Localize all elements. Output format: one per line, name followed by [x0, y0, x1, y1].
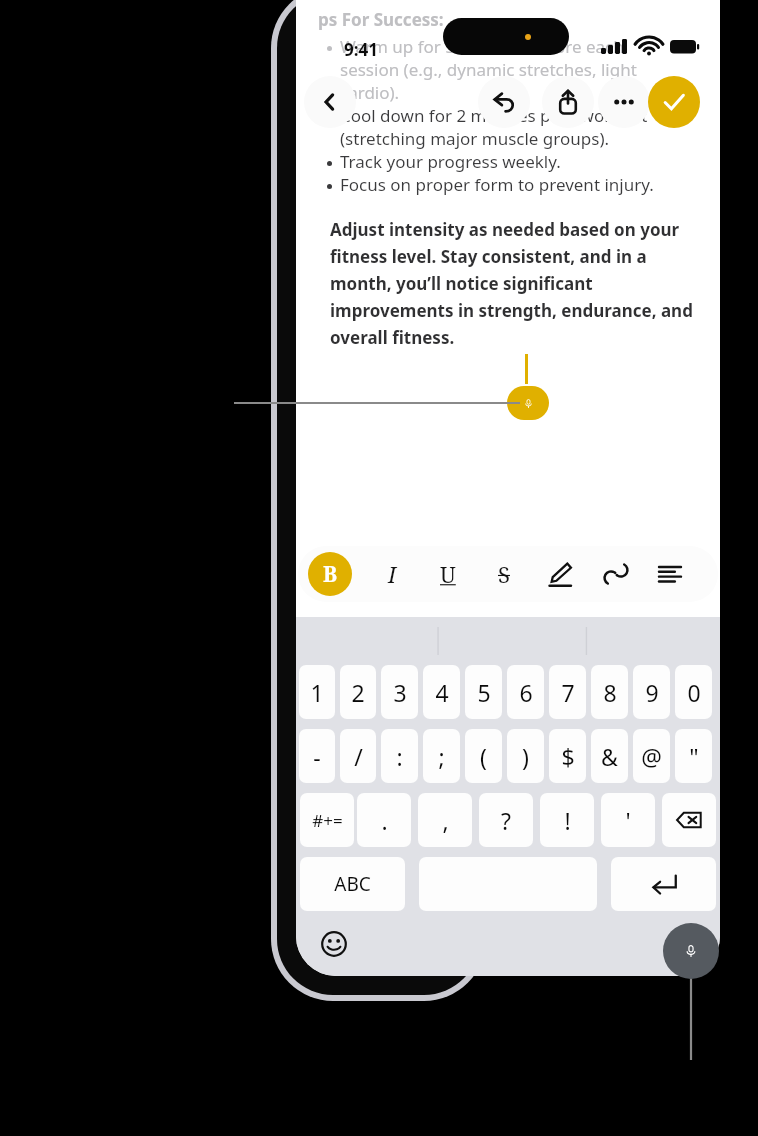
button[interactable]: ;: [423, 729, 460, 783]
button[interactable]: More options: [598, 76, 650, 128]
staticText: #+=: [312, 809, 343, 832]
staticText: ": [689, 741, 699, 772]
button[interactable]: ABC: [300, 857, 405, 911]
staticText: ): [522, 741, 529, 772]
staticText: 4: [435, 677, 449, 708]
button[interactable]: ": [675, 729, 712, 783]
staticText: 8: [603, 677, 617, 708]
staticText: :: [396, 741, 403, 772]
button[interactable]: Link: [596, 554, 636, 594]
button[interactable]: 3: [381, 665, 418, 719]
staticText: @: [641, 741, 662, 772]
staticText: /: [354, 741, 363, 772]
button[interactable]: Italic: [372, 554, 412, 594]
button[interactable]: 6: [507, 665, 544, 719]
staticText: 0: [687, 677, 701, 708]
button[interactable]: Underline: [428, 554, 468, 594]
staticText: Cool down for 2 minutes post-workout: [340, 104, 648, 127]
staticText: !: [564, 805, 571, 836]
button[interactable]: :: [381, 729, 418, 783]
button[interactable]: ': [601, 793, 655, 847]
button[interactable]: Strikethrough: [484, 554, 524, 594]
button[interactable]: (: [465, 729, 502, 783]
button[interactable]: 4: [423, 665, 460, 719]
button[interactable]: 9: [633, 665, 670, 719]
button[interactable]: /: [340, 729, 376, 783]
button[interactable]: $: [549, 729, 586, 783]
button[interactable]: 7: [549, 665, 586, 719]
button[interactable]: [304, 76, 356, 128]
staticText: (: [480, 741, 487, 772]
button[interactable]: Highlight: [540, 554, 580, 594]
staticText: session (e.g., dynamic stretches, light: [340, 58, 637, 81]
staticText: Focus on proper form to prevent injury.: [340, 173, 654, 196]
button[interactable]: !: [540, 793, 594, 847]
staticText: ': [625, 805, 631, 836]
button[interactable]: ,: [418, 793, 472, 847]
staticText: (stretching major muscle groups).: [340, 127, 610, 150]
button[interactable]: List: [650, 554, 690, 594]
staticText: ?: [501, 805, 511, 836]
button[interactable]: @: [633, 729, 670, 783]
button[interactable]: Dictate: [663, 923, 719, 979]
staticText: 9:41: [344, 38, 378, 61]
button[interactable]: Return: [611, 857, 716, 911]
staticText: 5: [477, 677, 491, 708]
staticText: &: [601, 741, 618, 772]
button[interactable]: #+=: [300, 793, 354, 847]
button[interactable]: Undo: [478, 76, 530, 128]
button[interactable]: ): [507, 729, 544, 783]
staticText: ,: [442, 805, 449, 836]
button[interactable]: Emoji: [314, 924, 354, 964]
staticText: B: [323, 560, 338, 589]
button[interactable]: Bold: [308, 552, 352, 596]
button[interactable]: Voice input: [507, 386, 549, 420]
staticText: 3: [393, 677, 407, 708]
staticText: ABC: [334, 871, 371, 897]
staticText: 9: [645, 677, 659, 708]
staticText: Track your progress weekly.: [340, 150, 561, 173]
button[interactable]: ?: [479, 793, 533, 847]
button[interactable]: &: [591, 729, 628, 783]
staticText: cardio).: [340, 81, 400, 104]
button[interactable]: 5: [465, 665, 502, 719]
button[interactable]: 2: [340, 665, 376, 719]
staticText: ;: [438, 741, 445, 772]
staticText: .: [381, 805, 388, 836]
staticText: 1: [310, 677, 324, 708]
staticText: 6: [519, 677, 533, 708]
button[interactable]: .: [357, 793, 411, 847]
button[interactable]: 8: [591, 665, 628, 719]
staticText: S: [498, 559, 510, 589]
staticText: Adjust intensity as needed based on your…: [330, 218, 706, 349]
button[interactable]: -: [299, 729, 335, 783]
staticText: 2: [351, 677, 365, 708]
staticText: 7: [561, 677, 575, 708]
staticText: -: [313, 741, 321, 772]
button[interactable]: Backspace: [662, 793, 716, 847]
staticText: ps For Success:: [318, 8, 444, 31]
button[interactable]: Done: [648, 76, 700, 128]
staticText: I: [388, 559, 397, 589]
button[interactable]: Share: [542, 76, 594, 128]
staticText: Warm up for 5 minutes before each: [340, 35, 624, 58]
button[interactable]: 0: [675, 665, 712, 719]
staticText: $: [561, 741, 575, 772]
button[interactable]: 1: [299, 665, 335, 719]
staticText: U: [440, 559, 456, 589]
